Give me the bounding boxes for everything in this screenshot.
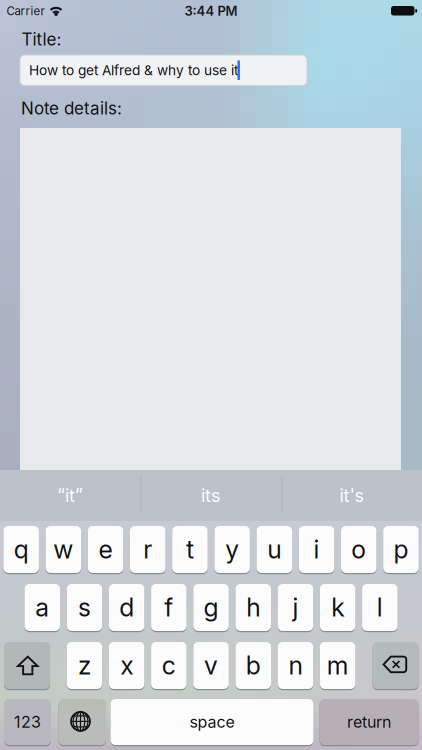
staticText: s <box>78 592 91 623</box>
button[interactable]: p <box>383 526 419 573</box>
staticText: it's <box>339 485 364 506</box>
button[interactable]: a <box>24 584 60 631</box>
button[interactable]: h <box>235 584 271 631</box>
button[interactable]: “it” <box>0 470 140 521</box>
button[interactable]: y <box>214 526 250 573</box>
button[interactable]: m <box>320 642 355 689</box>
staticText: 123 <box>14 712 41 732</box>
button[interactable]: Delete <box>372 642 418 689</box>
staticText: g <box>204 592 219 623</box>
staticText: c <box>162 650 176 681</box>
staticText: m <box>327 650 349 681</box>
staticText: How to get Alfred & why to use it <box>29 62 238 79</box>
button[interactable]: it's <box>282 470 422 521</box>
button[interactable]: w <box>46 526 81 573</box>
staticText: l <box>377 592 383 623</box>
staticText: a <box>35 592 49 623</box>
button[interactable]: x <box>109 642 144 689</box>
staticText: Note details: <box>21 98 122 119</box>
button[interactable]: z <box>67 642 102 689</box>
staticText: i <box>314 534 320 565</box>
staticText: space <box>189 712 234 732</box>
staticText: Carrier <box>6 4 44 18</box>
staticText: t <box>186 534 194 565</box>
staticText: f <box>164 592 173 623</box>
button[interactable]: n <box>278 642 313 689</box>
staticText: q <box>14 534 29 565</box>
staticText: return <box>347 712 391 732</box>
button[interactable]: k <box>320 584 355 631</box>
button[interactable]: 123 <box>4 699 51 745</box>
staticText: its <box>201 485 221 506</box>
staticText: 3:44 PM <box>184 3 237 19</box>
staticText: y <box>225 534 239 565</box>
button[interactable]: u <box>257 526 292 573</box>
staticText: n <box>288 650 302 681</box>
staticText: j <box>292 592 298 623</box>
staticText: x <box>120 650 133 681</box>
button[interactable]: r <box>130 526 165 573</box>
button[interactable]: its <box>141 470 281 521</box>
button[interactable]: s <box>67 584 102 631</box>
button[interactable]: i <box>299 526 334 573</box>
staticText: r <box>143 534 152 565</box>
staticText: “it” <box>57 485 83 506</box>
button[interactable]: t <box>172 526 208 573</box>
button[interactable]: f <box>151 584 187 631</box>
button[interactable]: q <box>3 526 39 573</box>
button[interactable]: space <box>110 699 313 745</box>
staticText: u <box>267 534 281 565</box>
staticText: Title: <box>21 29 61 50</box>
staticText: v <box>204 650 218 681</box>
staticText: o <box>351 534 366 565</box>
button[interactable]: return <box>319 699 418 745</box>
button[interactable]: c <box>151 642 187 689</box>
button[interactable]: v <box>193 642 229 689</box>
button[interactable]: b <box>235 642 271 689</box>
staticText: z <box>78 650 91 681</box>
button[interactable]: g <box>193 584 229 631</box>
button[interactable]: Shift <box>4 642 50 689</box>
staticText: h <box>246 592 260 623</box>
staticText: p <box>393 534 408 565</box>
button[interactable]: d <box>109 584 144 631</box>
staticText: k <box>331 592 344 623</box>
button[interactable]: o <box>341 526 376 573</box>
staticText: e <box>99 534 113 565</box>
staticText: b <box>246 650 261 681</box>
staticText: w <box>53 534 73 565</box>
button[interactable]: Title <box>20 55 307 85</box>
button[interactable]: e <box>88 526 123 573</box>
button[interactable]: j <box>278 584 313 631</box>
button[interactable]: l <box>362 584 398 631</box>
button[interactable]: Next keyboard <box>58 699 106 745</box>
staticText: d <box>119 592 134 623</box>
